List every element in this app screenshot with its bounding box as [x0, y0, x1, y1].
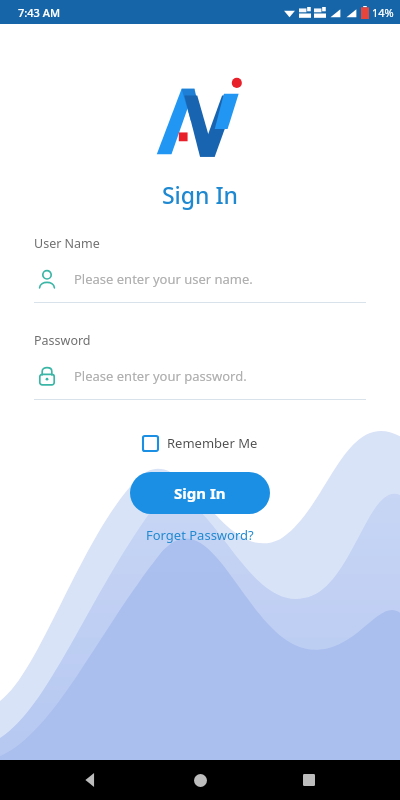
- staticText: Sign In: [174, 483, 226, 503]
- other: User name: [34, 266, 60, 292]
- button[interactable]: Back: [73, 762, 109, 798]
- button[interactable]: User name: [34, 264, 366, 294]
- staticText: 7:43 AM: [18, 5, 61, 20]
- other: Password: [34, 363, 60, 389]
- button[interactable]: Password: [34, 361, 366, 391]
- staticText: Password: [34, 332, 91, 349]
- button[interactable]: Home: [182, 762, 218, 798]
- button[interactable]: Forget Password?: [138, 522, 262, 548]
- button[interactable]: Recent apps: [291, 762, 327, 798]
- button[interactable]: Remember Me: [137, 430, 264, 456]
- staticText: Sign In: [0, 179, 400, 210]
- button[interactable]: Sign In: [130, 472, 270, 514]
- staticText: Please enter your password.: [74, 367, 247, 385]
- staticText: 14%: [372, 5, 394, 20]
- staticText: User Name: [34, 235, 100, 252]
- staticText: Remember Me: [167, 434, 258, 452]
- staticText: Please enter your user name.: [74, 270, 253, 288]
